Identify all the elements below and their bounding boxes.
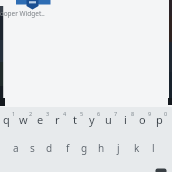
button[interactable]: o: [134, 108, 151, 130]
staticText: 8: [131, 110, 135, 117]
button[interactable]: g: [76, 138, 93, 158]
staticText: 2: [29, 110, 33, 117]
staticText: q: [3, 112, 10, 127]
staticText: r: [55, 112, 60, 127]
staticText: 1: [12, 110, 16, 117]
staticText: i: [124, 112, 127, 127]
staticText: j: [117, 141, 120, 155]
staticText: Zooper Widget..: [0, 9, 45, 18]
button[interactable]: y: [83, 108, 100, 130]
button[interactable]: j: [110, 138, 127, 158]
button[interactable]: u: [100, 108, 117, 130]
staticText: w: [19, 112, 28, 127]
staticText: 3: [46, 110, 50, 117]
staticText: a: [13, 141, 19, 155]
button[interactable]: l: [145, 138, 162, 158]
staticText: 0: [164, 110, 168, 117]
staticText: 4: [63, 110, 67, 117]
staticText: 7: [114, 110, 118, 117]
staticText: l: [152, 141, 155, 155]
staticText: t: [73, 112, 77, 127]
staticText: g: [81, 141, 88, 155]
button[interactable]: p: [151, 108, 168, 130]
staticText: d: [46, 141, 53, 155]
staticText: y: [89, 112, 95, 127]
button[interactable]: w: [15, 108, 32, 130]
staticText: e: [37, 112, 44, 127]
staticText: 9: [148, 110, 152, 117]
button[interactable]: Zooper Widget..: [0, 9, 60, 19]
button[interactable]: e: [32, 108, 49, 130]
staticText: p: [156, 112, 163, 127]
button[interactable]: h: [93, 138, 110, 158]
button[interactable]: q: [0, 108, 15, 130]
button[interactable]: f: [59, 138, 76, 158]
button[interactable]: i: [117, 108, 134, 130]
staticText: f: [66, 141, 70, 155]
staticText: 5: [80, 110, 84, 117]
button[interactable]: r: [49, 108, 66, 130]
button[interactable]: a: [7, 138, 24, 158]
button[interactable]: t: [66, 108, 83, 130]
button[interactable]: d: [41, 138, 58, 158]
button[interactable]: k: [128, 138, 145, 158]
staticText: h: [98, 141, 105, 155]
staticText: s: [30, 141, 35, 155]
staticText: k: [134, 141, 140, 155]
staticText: o: [139, 112, 146, 127]
button[interactable]: s: [24, 138, 41, 158]
staticText: 6: [97, 110, 101, 117]
staticText: u: [105, 112, 112, 127]
